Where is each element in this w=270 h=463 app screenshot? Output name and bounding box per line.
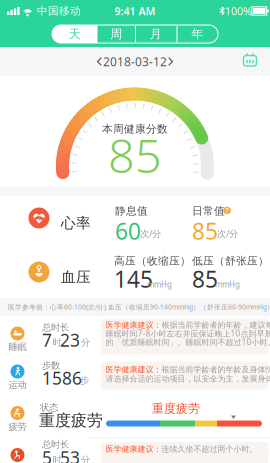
staticText: 次/分 (217, 227, 238, 240)
staticText: 周 (110, 27, 122, 41)
staticText: 静息值 (115, 204, 148, 217)
staticText: 总时长 (42, 322, 69, 333)
button[interactable]: 天 (52, 25, 97, 43)
staticText: 85 (192, 216, 218, 246)
staticText: 日常值 (192, 204, 225, 217)
staticText: 医学参考值：心率60-100(次/分) 血压（收缩压90-140mmHg）（舒张… (8, 303, 270, 311)
staticText: 次/分 (140, 227, 161, 240)
staticText: 医学健康建议： (105, 444, 161, 454)
staticText: 疲劳 (8, 421, 26, 433)
staticText: 总时长 (42, 439, 69, 450)
staticText: 53 (60, 446, 80, 463)
staticText: 时 (52, 337, 61, 348)
staticText: 低压（舒张压） (192, 254, 269, 267)
staticText: 心率 (61, 214, 91, 232)
button[interactable]: 周 (97, 25, 135, 43)
staticText: ? (225, 206, 228, 215)
staticText: 85 (192, 264, 218, 294)
staticText: mmHg (147, 279, 172, 290)
staticText: 年 (191, 27, 203, 41)
staticText: 9:41 AM (114, 4, 155, 18)
staticText: 23 (60, 328, 80, 351)
staticText: 的「优质睡眠时间」。睡眠时间不超过10小时。 (105, 337, 270, 347)
button[interactable] (241, 52, 259, 67)
staticText: 1586 (42, 366, 82, 389)
staticText: 时 (52, 454, 61, 463)
staticText: 连续久坐不超过两个小时。 (161, 444, 257, 454)
staticText: 请选择合适的运动项目，以安全为主，发展身体素质。 (105, 373, 270, 384)
button[interactable]: ? (223, 206, 231, 215)
staticText: 医学健康建议： (105, 320, 161, 330)
staticText: 高压（收缩压） (114, 254, 191, 267)
staticText: 60 (115, 216, 141, 246)
staticText: 中国移动 (37, 4, 81, 17)
staticText: 天 (69, 27, 81, 41)
staticText: 重度疲劳 (39, 411, 103, 430)
staticText: 5 (42, 446, 52, 463)
staticText: 睡眠时间7-8小时左右并应保证晚上10点到早晨5点 (105, 328, 270, 339)
staticText: 月 (150, 27, 162, 41)
staticText: 步 (80, 375, 89, 386)
staticText: 重度疲劳 (152, 401, 200, 416)
staticText: 医学健康建议： (105, 365, 161, 374)
staticText: 分 (81, 337, 90, 348)
staticText: 85 (108, 124, 162, 186)
staticText: 分 (81, 454, 90, 463)
staticText: 7 (42, 328, 52, 351)
button[interactable]: 月 (135, 25, 176, 43)
staticText: 100% (225, 4, 252, 18)
button[interactable]: 年 (176, 25, 218, 43)
staticText: 运动 (8, 379, 26, 391)
staticText: 根据当前学龄者的年龄，建议每天 (161, 320, 270, 330)
button[interactable] (164, 54, 176, 68)
staticText: 2018-03-12 (103, 53, 167, 69)
staticText: mmHg (215, 279, 240, 290)
button[interactable] (93, 54, 105, 68)
staticText: 步数 (42, 360, 60, 371)
staticText: 睡眠 (8, 341, 26, 353)
staticText: 145 (114, 264, 153, 294)
staticText: 根据当前学龄者的年龄及身体情况， (161, 365, 270, 374)
staticText: 状态 (40, 402, 58, 413)
staticText: 本周健康分数 (102, 122, 168, 135)
staticText: 血压 (61, 268, 91, 286)
